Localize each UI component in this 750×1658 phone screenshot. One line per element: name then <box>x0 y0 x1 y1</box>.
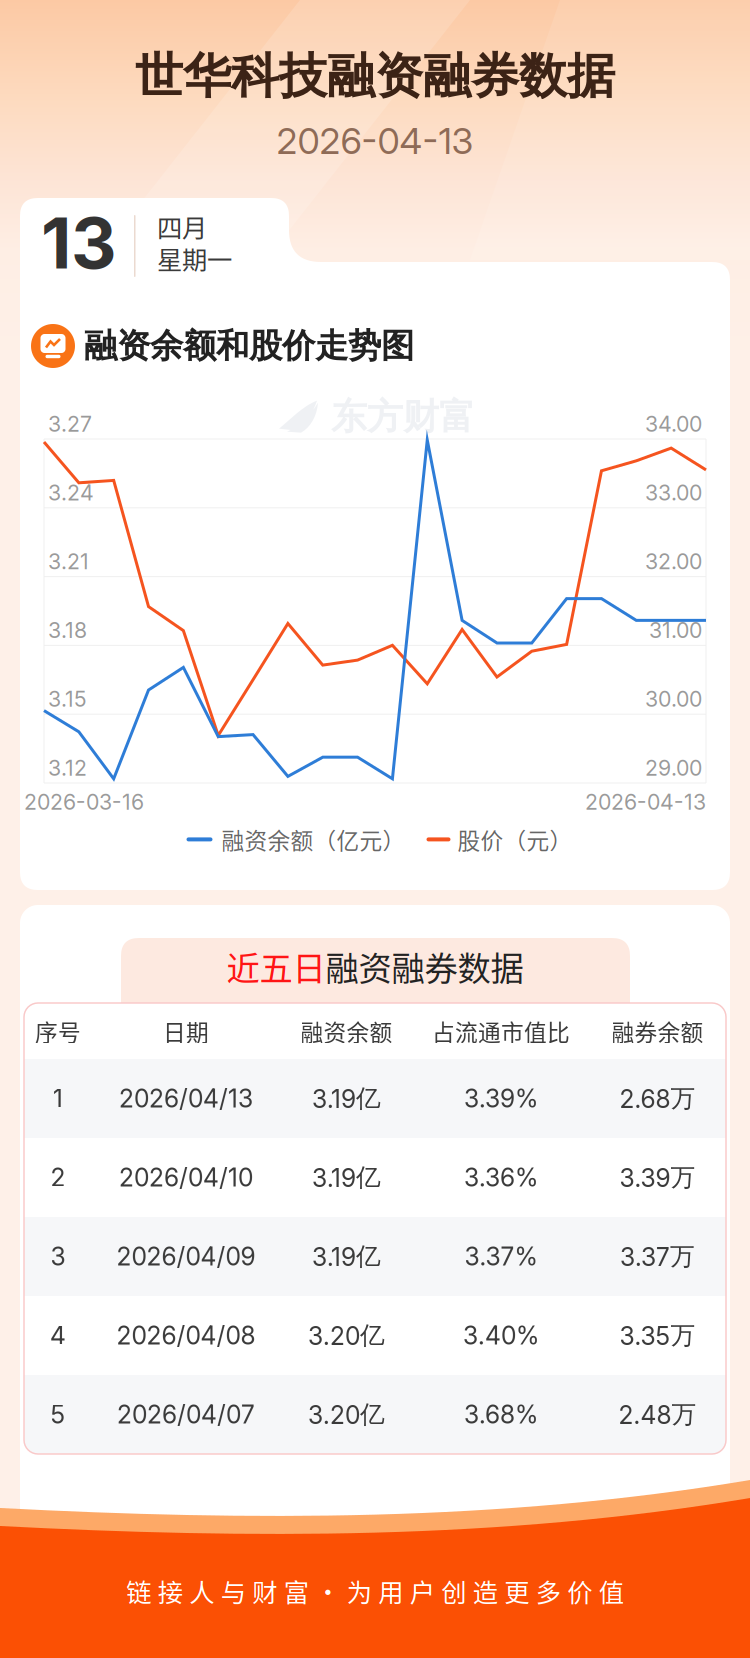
staticText: 31.00 <box>649 617 702 643</box>
staticText: 3.37万 <box>620 1241 695 1272</box>
staticText: 近五日 <box>226 942 325 990</box>
staticText: 融券余额 <box>611 1015 703 1047</box>
staticText: 30.00 <box>645 686 702 712</box>
staticText: 占流通市值比 <box>432 1015 570 1047</box>
staticText: 4 <box>50 1321 66 1350</box>
staticText: 3.15 <box>48 686 87 712</box>
staticText: 东方财富 <box>331 394 475 439</box>
staticText: 融资余额（亿元） <box>221 823 405 856</box>
staticText: 3.35万 <box>619 1320 695 1351</box>
staticText: 32.00 <box>645 549 702 574</box>
staticText: 34.00 <box>645 411 702 437</box>
staticText: 2026/04/07 <box>117 1400 255 1429</box>
staticText: 1 <box>53 1084 63 1113</box>
staticText: 2026-04-13 <box>585 789 706 815</box>
staticText: 融资余额 <box>300 1015 392 1047</box>
staticText: 星期一 <box>157 240 232 277</box>
staticText: 2026/04/08 <box>116 1321 255 1350</box>
staticText: 33.00 <box>645 480 702 506</box>
staticText: 3.19亿 <box>312 1083 381 1114</box>
staticText: 2026-03-16 <box>24 789 144 815</box>
staticText: 3.39万 <box>619 1162 695 1193</box>
staticText: 3.21 <box>48 549 89 574</box>
staticText: 3.36% <box>464 1163 538 1192</box>
staticText: 3.24 <box>48 480 94 506</box>
staticText: 序号 <box>35 1015 81 1047</box>
staticText: 2026/04/13 <box>119 1084 253 1113</box>
staticText: 2.48万 <box>618 1399 696 1430</box>
staticText: 3.37% <box>464 1242 537 1271</box>
staticText: 3.40% <box>463 1321 539 1350</box>
staticText: 3.20亿 <box>308 1399 385 1430</box>
staticText: 3.19亿 <box>312 1241 381 1272</box>
staticText: 3.20亿 <box>308 1320 385 1351</box>
staticText: 2.68万 <box>619 1083 695 1114</box>
staticText: 3.27 <box>48 411 92 437</box>
staticText: 5 <box>50 1400 65 1429</box>
staticText: 四月 <box>157 208 207 245</box>
staticText: 3.12 <box>48 755 87 781</box>
staticText: 世华科技融资融券数据 <box>135 46 615 106</box>
staticText: 3.39% <box>464 1084 538 1113</box>
staticText: 29.00 <box>645 755 702 781</box>
staticText: 融资余额和股价走势图 <box>84 325 414 367</box>
staticText: 3.18 <box>48 617 87 643</box>
staticText: 3.68% <box>464 1400 538 1429</box>
staticText: 融资融券数据 <box>325 942 523 990</box>
staticText: 2 <box>50 1163 65 1192</box>
staticText: 股价（元） <box>457 823 572 856</box>
staticText: 2026/04/10 <box>119 1163 253 1192</box>
staticText: 日期 <box>163 1015 209 1047</box>
staticText: 3.19亿 <box>312 1162 381 1193</box>
staticText: 13 <box>41 200 117 285</box>
staticText: 2026-04-13 <box>276 119 473 163</box>
staticText: 3 <box>50 1242 65 1271</box>
staticText: 2026/04/09 <box>116 1242 255 1271</box>
staticText: 链接人与财富·为用户创造更多价值 <box>126 1573 624 1609</box>
